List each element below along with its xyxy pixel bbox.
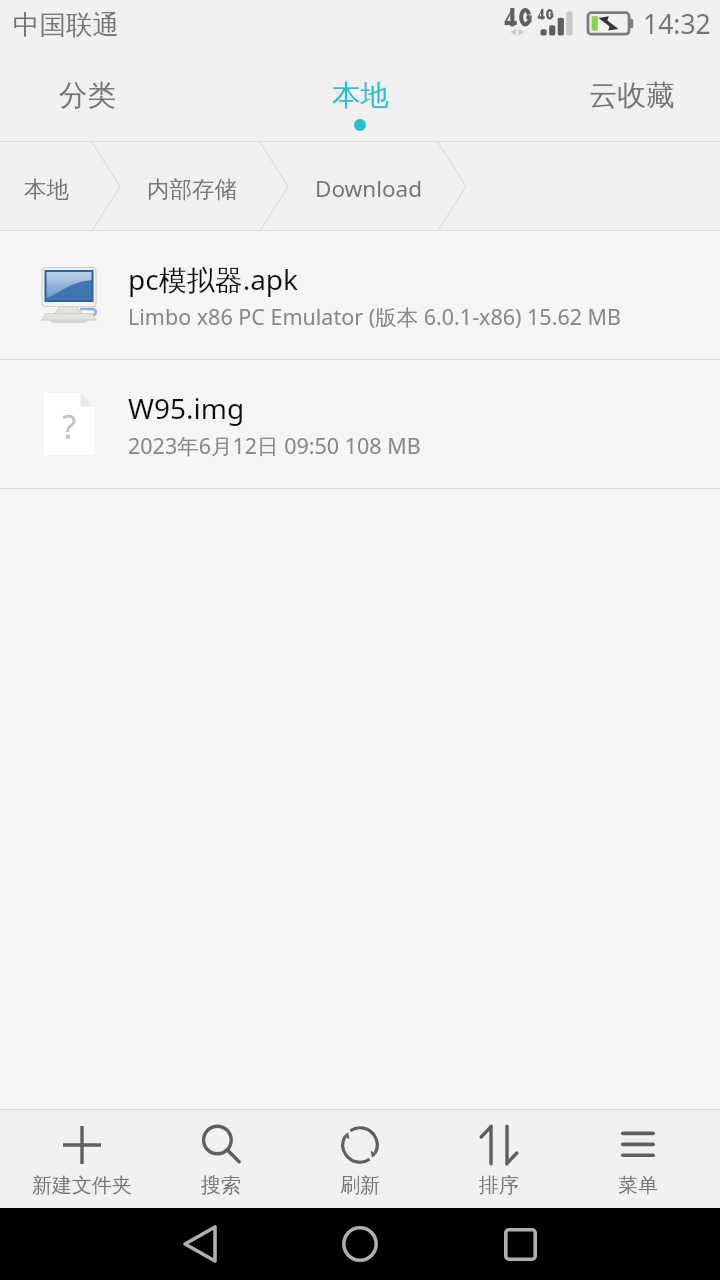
staticText: 新建文件夹 [32, 1173, 132, 1198]
staticText: pc模拟器.apk [128, 260, 299, 298]
button[interactable]: 分类 [0, 50, 177, 142]
staticText: 内部存储 [147, 175, 237, 203]
staticText: W95.img [128, 389, 245, 427]
staticText: 本地 [24, 175, 69, 203]
button[interactable]: Back [164, 1208, 236, 1280]
staticText: 排序 [479, 1173, 519, 1198]
button[interactable]: Recent apps [484, 1208, 556, 1280]
button[interactable]: 云收藏 [542, 50, 720, 142]
button[interactable]: ? [0, 360, 720, 489]
button[interactable]: Home [324, 1208, 396, 1280]
button[interactable]: 排序 [429, 1110, 568, 1208]
staticText: 2023年6月12日 09:50 108 MB [128, 431, 421, 460]
button[interactable]: pc模拟器.apk [0, 231, 720, 360]
button[interactable]: 本地 [270, 50, 450, 142]
staticText: ? [62, 404, 77, 449]
button[interactable]: 新建文件夹 [12, 1110, 151, 1208]
staticText: 菜单 [618, 1173, 658, 1198]
staticText: 本地 [332, 78, 389, 114]
staticText: 分类 [59, 78, 116, 114]
staticText: 搜索 [201, 1173, 241, 1198]
staticText: 刷新 [340, 1173, 380, 1198]
button[interactable]: 刷新 [290, 1110, 429, 1208]
staticText: 云收藏 [589, 78, 675, 114]
staticText: 14:32 [643, 6, 711, 42]
staticText: Limbo x86 PC Emulator (版本 6.0.1-x86) 15.… [128, 302, 622, 331]
staticText: 中国联通 [13, 8, 119, 41]
button[interactable]: 搜索 [151, 1110, 290, 1208]
staticText: Download [315, 173, 423, 204]
button[interactable]: 菜单 [568, 1110, 707, 1208]
